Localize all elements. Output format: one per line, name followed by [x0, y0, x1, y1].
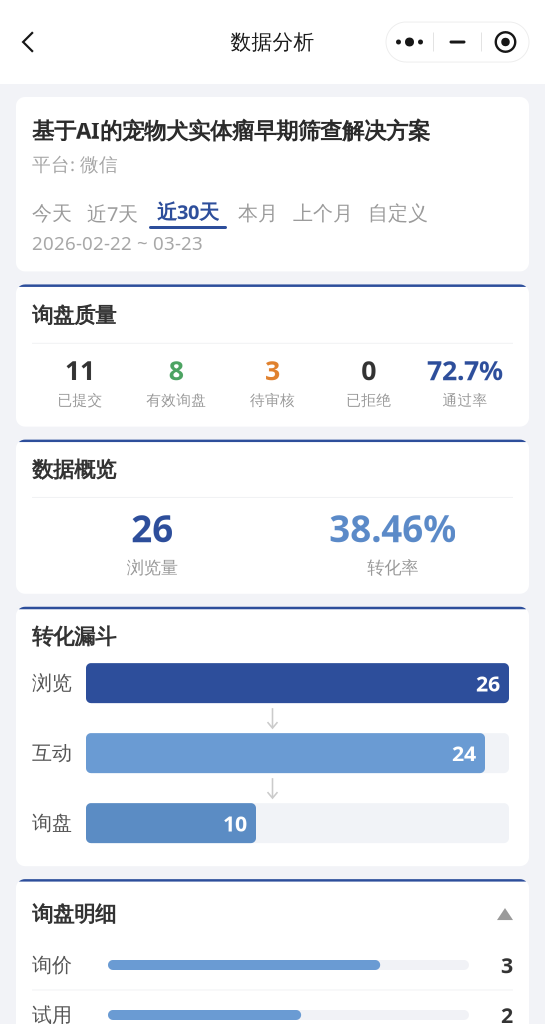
button[interactable]: More [386, 23, 433, 61]
staticText: 已提交 [58, 391, 103, 410]
button[interactable]: 本月 [238, 201, 278, 226]
staticText: 72.7% [427, 352, 503, 388]
staticText: 自定义 [368, 201, 428, 226]
button[interactable]: Collapse section [497, 908, 513, 920]
staticText: 待审核 [250, 391, 295, 410]
staticText: 10 [223, 809, 247, 838]
button[interactable]: Minimize [434, 23, 481, 61]
staticText: 有效询盘 [146, 391, 206, 410]
staticText: 互动 [32, 740, 72, 766]
staticText: 询盘明细 [32, 901, 116, 927]
staticText: 询价 [32, 952, 72, 978]
staticText: 0 [361, 352, 376, 388]
staticText: 数据分析 [230, 29, 314, 55]
staticText: 通过率 [442, 391, 487, 410]
staticText: 询盘质量 [32, 302, 116, 329]
button[interactable]: 今天 [32, 201, 72, 226]
staticText: 8 [169, 352, 184, 388]
staticText: 转化漏斗 [32, 623, 116, 650]
button[interactable]: 自定义 [368, 201, 428, 226]
staticText: 38.46% [329, 503, 456, 553]
staticText: 26 [476, 669, 500, 698]
staticText: 3 [501, 950, 513, 980]
staticText: 浏览 [32, 670, 72, 696]
staticText: 平台: 微信 [32, 151, 118, 177]
staticText: 2026-02-22 ~ 03-23 [32, 230, 203, 255]
staticText: 24 [452, 739, 476, 768]
button[interactable]: 近7天 [87, 200, 138, 227]
staticText: 试用 [32, 1002, 72, 1024]
staticText: 3 [265, 352, 280, 388]
staticText: 上个月 [293, 201, 353, 226]
staticText: 26 [131, 503, 173, 553]
staticText: 数据概览 [32, 456, 116, 483]
staticText: 11 [65, 352, 95, 388]
staticText: 已拒绝 [346, 391, 391, 410]
staticText: 本月 [238, 201, 278, 226]
staticText: 近30天 [157, 198, 219, 225]
button[interactable]: Back [6, 20, 50, 64]
staticText: 近7天 [87, 200, 138, 227]
staticText: 基于AI的宠物犬实体瘤早期筛查解决方案 [32, 115, 430, 145]
staticText: 浏览量 [127, 557, 178, 579]
button[interactable]: 近30天 [153, 198, 223, 229]
staticText: 询盘 [32, 810, 72, 836]
button[interactable]: Close [482, 23, 529, 61]
staticText: 2 [501, 1000, 513, 1024]
staticText: 今天 [32, 201, 72, 226]
button[interactable]: 上个月 [293, 201, 353, 226]
staticText: 转化率 [367, 557, 418, 579]
